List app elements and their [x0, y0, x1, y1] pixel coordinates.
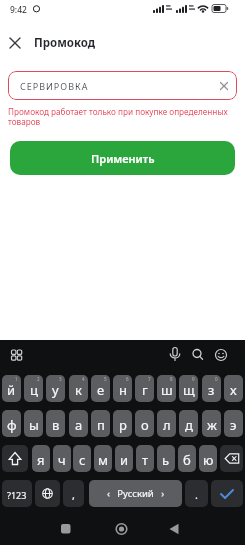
staticText: и: [120, 451, 129, 469]
button[interactable]: в: [46, 410, 65, 437]
staticText: я: [37, 451, 45, 469]
button[interactable]: п: [91, 410, 110, 437]
staticText: Промокод: [34, 35, 96, 51]
button[interactable]: б: [178, 445, 196, 472]
staticText: 8: [170, 376, 173, 382]
staticText: р: [119, 416, 127, 434]
staticText: о: [141, 416, 149, 434]
button[interactable]: р: [113, 410, 132, 437]
button[interactable]: н: [113, 375, 132, 402]
staticText: 3: [59, 376, 62, 382]
staticText: 1: [15, 376, 18, 382]
button[interactable]: о: [135, 410, 154, 437]
button[interactable]: и: [115, 445, 133, 472]
staticText: ж: [207, 416, 217, 434]
button[interactable]: я: [32, 445, 50, 472]
staticText: ,: [72, 487, 75, 502]
staticText: ?123: [7, 489, 27, 501]
button[interactable]: СЕРВИРОВКА: [8, 71, 237, 100]
staticText: 2: [37, 376, 40, 382]
staticText: ф: [7, 416, 17, 434]
button[interactable]: т: [136, 445, 154, 472]
staticText: 4: [82, 376, 85, 382]
staticText: з: [208, 381, 215, 399]
button[interactable]: з: [202, 375, 221, 402]
staticText: ч: [58, 451, 66, 469]
button[interactable]: е: [91, 375, 110, 402]
button[interactable]: у: [46, 375, 65, 402]
button[interactable]: .: [185, 480, 208, 507]
staticText: 5: [104, 376, 107, 382]
staticText: а: [75, 416, 83, 434]
button[interactable]: ц: [24, 375, 43, 402]
button[interactable]: ш: [157, 375, 176, 402]
button[interactable]: ‹ Русский ›: [89, 480, 182, 507]
button[interactable]: [2, 445, 28, 472]
staticText: у: [52, 381, 59, 399]
staticText: е: [97, 381, 105, 399]
button[interactable]: а: [69, 410, 88, 437]
button[interactable]: х: [224, 375, 243, 402]
staticText: .: [195, 487, 198, 502]
button[interactable]: ,: [63, 480, 84, 507]
button[interactable]: ю: [199, 445, 217, 472]
staticText: СЕРВИРОВКА: [20, 80, 89, 92]
staticText: ‹ Русский ›: [107, 487, 165, 500]
button[interactable]: л: [157, 410, 176, 437]
button[interactable]: ?123: [2, 480, 32, 507]
staticText: с: [79, 451, 86, 469]
staticText: г: [142, 381, 148, 399]
button[interactable]: к: [69, 375, 88, 402]
staticText: щ: [183, 381, 195, 399]
button[interactable]: с: [73, 445, 91, 472]
staticText: э: [230, 416, 237, 434]
button[interactable]: ы: [24, 410, 43, 437]
staticText: 7: [148, 376, 151, 382]
staticText: 9:42: [10, 4, 27, 16]
staticText: Применить: [91, 151, 155, 166]
button[interactable]: э: [224, 410, 243, 437]
button[interactable]: [6, 34, 24, 52]
button[interactable]: [211, 480, 243, 507]
staticText: Промокод работает только при покупке опр…: [8, 106, 228, 127]
staticText: ц: [30, 381, 38, 399]
button[interactable]: ф: [2, 410, 21, 437]
staticText: т: [142, 451, 149, 469]
staticText: в: [52, 416, 60, 434]
button[interactable]: г: [135, 375, 154, 402]
staticText: 0: [215, 376, 218, 382]
button[interactable]: [35, 480, 60, 507]
staticText: м: [98, 451, 108, 469]
button[interactable]: й: [2, 375, 21, 402]
staticText: ы: [29, 416, 39, 434]
staticText: х: [230, 381, 237, 399]
staticText: 6: [126, 376, 129, 382]
staticText: л: [163, 416, 171, 434]
button[interactable]: Применить: [10, 141, 235, 175]
staticText: п: [97, 416, 105, 434]
button[interactable]: ь: [157, 445, 175, 472]
staticText: к: [75, 381, 82, 399]
staticText: й: [7, 381, 16, 399]
staticText: д: [185, 416, 193, 434]
button[interactable]: ч: [53, 445, 71, 472]
staticText: н: [119, 381, 127, 399]
button[interactable]: ж: [202, 410, 221, 437]
staticText: б: [183, 451, 191, 469]
button[interactable]: [220, 445, 243, 472]
staticText: ю: [203, 451, 214, 469]
staticText: 9: [192, 376, 195, 382]
staticText: ш: [161, 381, 173, 399]
button[interactable]: д: [179, 410, 198, 437]
staticText: ь: [162, 451, 170, 469]
button[interactable]: м: [94, 445, 112, 472]
button[interactable]: щ: [179, 375, 198, 402]
